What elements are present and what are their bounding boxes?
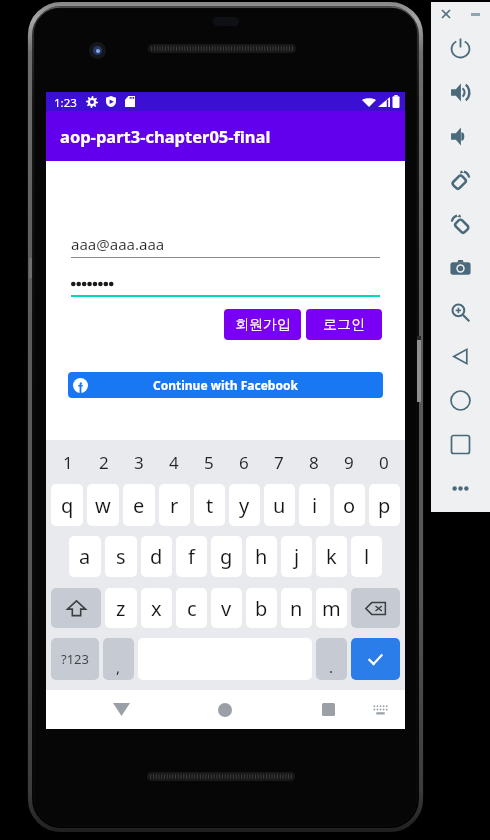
button[interactable]: i (299, 484, 330, 526)
button[interactable]: Continue with Facebook (68, 372, 383, 398)
button[interactable]: r (159, 484, 190, 526)
staticText: aaa@aaa.aaa (71, 234, 165, 254)
button[interactable]: q (51, 484, 83, 526)
staticText: t (206, 492, 214, 519)
button[interactable]: Zoom (431, 290, 490, 334)
staticText: f (188, 543, 195, 570)
button[interactable]: Rotate right (431, 202, 490, 246)
staticText: g (220, 543, 233, 570)
button[interactable]: g (211, 536, 242, 577)
staticText: 로그인 (323, 316, 365, 334)
button[interactable]: a (69, 536, 101, 577)
button[interactable]: 로그인 (306, 309, 382, 340)
button[interactable]: 3 (121, 440, 156, 484)
staticText: h (255, 543, 268, 570)
staticText: , (116, 657, 121, 677)
button[interactable]: y (229, 484, 260, 526)
button[interactable]: m (316, 588, 347, 628)
button[interactable]: k (316, 536, 347, 577)
staticText: 1 (63, 451, 73, 474)
button[interactable]: h (246, 536, 277, 577)
staticText: 0 (379, 451, 389, 474)
button[interactable]: 4 (156, 440, 191, 484)
staticText: c (187, 595, 197, 622)
button[interactable]: Shift (51, 588, 101, 628)
staticText: 7 (274, 451, 284, 474)
staticText: e (133, 492, 145, 519)
button[interactable]: , (103, 638, 134, 680)
button[interactable]: x (141, 588, 172, 628)
staticText: i (312, 492, 318, 519)
button[interactable]: Volume up (431, 70, 490, 114)
button[interactable]: Recents (310, 692, 346, 727)
button[interactable]: n (281, 588, 312, 628)
staticText: aop-part3-chapter05-final (60, 125, 271, 147)
button[interactable]: j (281, 536, 312, 577)
staticText: 2 (99, 451, 109, 474)
button[interactable]: 9 (331, 440, 366, 484)
button[interactable]: 0 (366, 440, 401, 484)
button[interactable]: b (246, 588, 277, 628)
button[interactable]: v (211, 588, 242, 628)
button[interactable]: Screenshot (431, 246, 490, 290)
staticText: y (239, 492, 250, 519)
button[interactable]: 회원가입 (224, 309, 301, 340)
button[interactable]: f (176, 536, 207, 577)
staticText: o (343, 492, 356, 519)
staticText: 5 (204, 451, 214, 474)
button[interactable]: z (105, 588, 137, 628)
button[interactable]: s (105, 536, 137, 577)
staticText: 4 (169, 451, 179, 474)
button[interactable]: Back (431, 334, 490, 378)
staticText: 1:23 (54, 95, 77, 111)
button[interactable]: Back (103, 692, 139, 727)
button[interactable]: Home (207, 692, 243, 727)
staticText: . (329, 657, 334, 677)
staticText: k (326, 543, 337, 570)
staticText: z (116, 595, 126, 622)
button[interactable]: l (351, 536, 382, 577)
button[interactable]: 1 (50, 440, 86, 484)
button[interactable]: 2 (86, 440, 121, 484)
button[interactable]: o (334, 484, 365, 526)
button[interactable]: p (369, 484, 400, 526)
button[interactable]: Switch keyboard (362, 692, 398, 727)
button[interactable]: More options (431, 466, 490, 510)
button[interactable]: c (176, 588, 207, 628)
button[interactable]: 8 (296, 440, 331, 484)
button[interactable]: Backspace (351, 588, 400, 628)
button[interactable]: . (316, 638, 347, 680)
button[interactable]: t (194, 484, 225, 526)
button[interactable]: Home (431, 378, 490, 422)
staticText: b (255, 595, 268, 622)
button[interactable]: Rotate left (431, 158, 490, 202)
button[interactable]: w (87, 484, 119, 526)
button[interactable]: d (141, 536, 172, 577)
button[interactable]: Overview (431, 422, 490, 466)
staticText: l (364, 543, 370, 570)
staticText: Continue with Facebook (153, 377, 298, 393)
staticText: x (151, 595, 162, 622)
button[interactable]: 5 (191, 440, 226, 484)
staticText: a (79, 543, 91, 570)
button[interactable]: Close (431, 2, 460, 26)
staticText: q (61, 492, 74, 519)
staticText: s (116, 543, 126, 570)
button[interactable]: e (123, 484, 155, 526)
button[interactable]: Volume down (431, 114, 490, 158)
button[interactable]: Minimize (460, 2, 490, 26)
staticText: m (322, 595, 341, 622)
staticText: ?123 (61, 650, 89, 668)
button[interactable]: 6 (226, 440, 261, 484)
staticText: 9 (344, 451, 354, 474)
button[interactable]: Power (431, 26, 490, 70)
staticText: 8 (309, 451, 319, 474)
button[interactable]: Enter (351, 638, 400, 680)
button[interactable]: u (264, 484, 295, 526)
staticText: d (150, 543, 163, 570)
staticText: 6 (239, 451, 249, 474)
button[interactable]: 7 (261, 440, 296, 484)
button[interactable]: ?123 (51, 638, 99, 680)
staticText: r (170, 492, 179, 519)
